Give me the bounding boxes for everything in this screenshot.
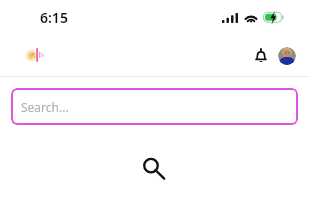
- staticText: 6:15: [40, 8, 68, 27]
- staticText: Search...: [21, 99, 69, 115]
- button[interactable]: Profile: [278, 47, 296, 65]
- button[interactable]: Search: [141, 156, 165, 180]
- button[interactable]: Search...: [11, 88, 298, 125]
- button[interactable]: Home: [28, 48, 45, 62]
- button[interactable]: Notifications: [252, 45, 270, 65]
